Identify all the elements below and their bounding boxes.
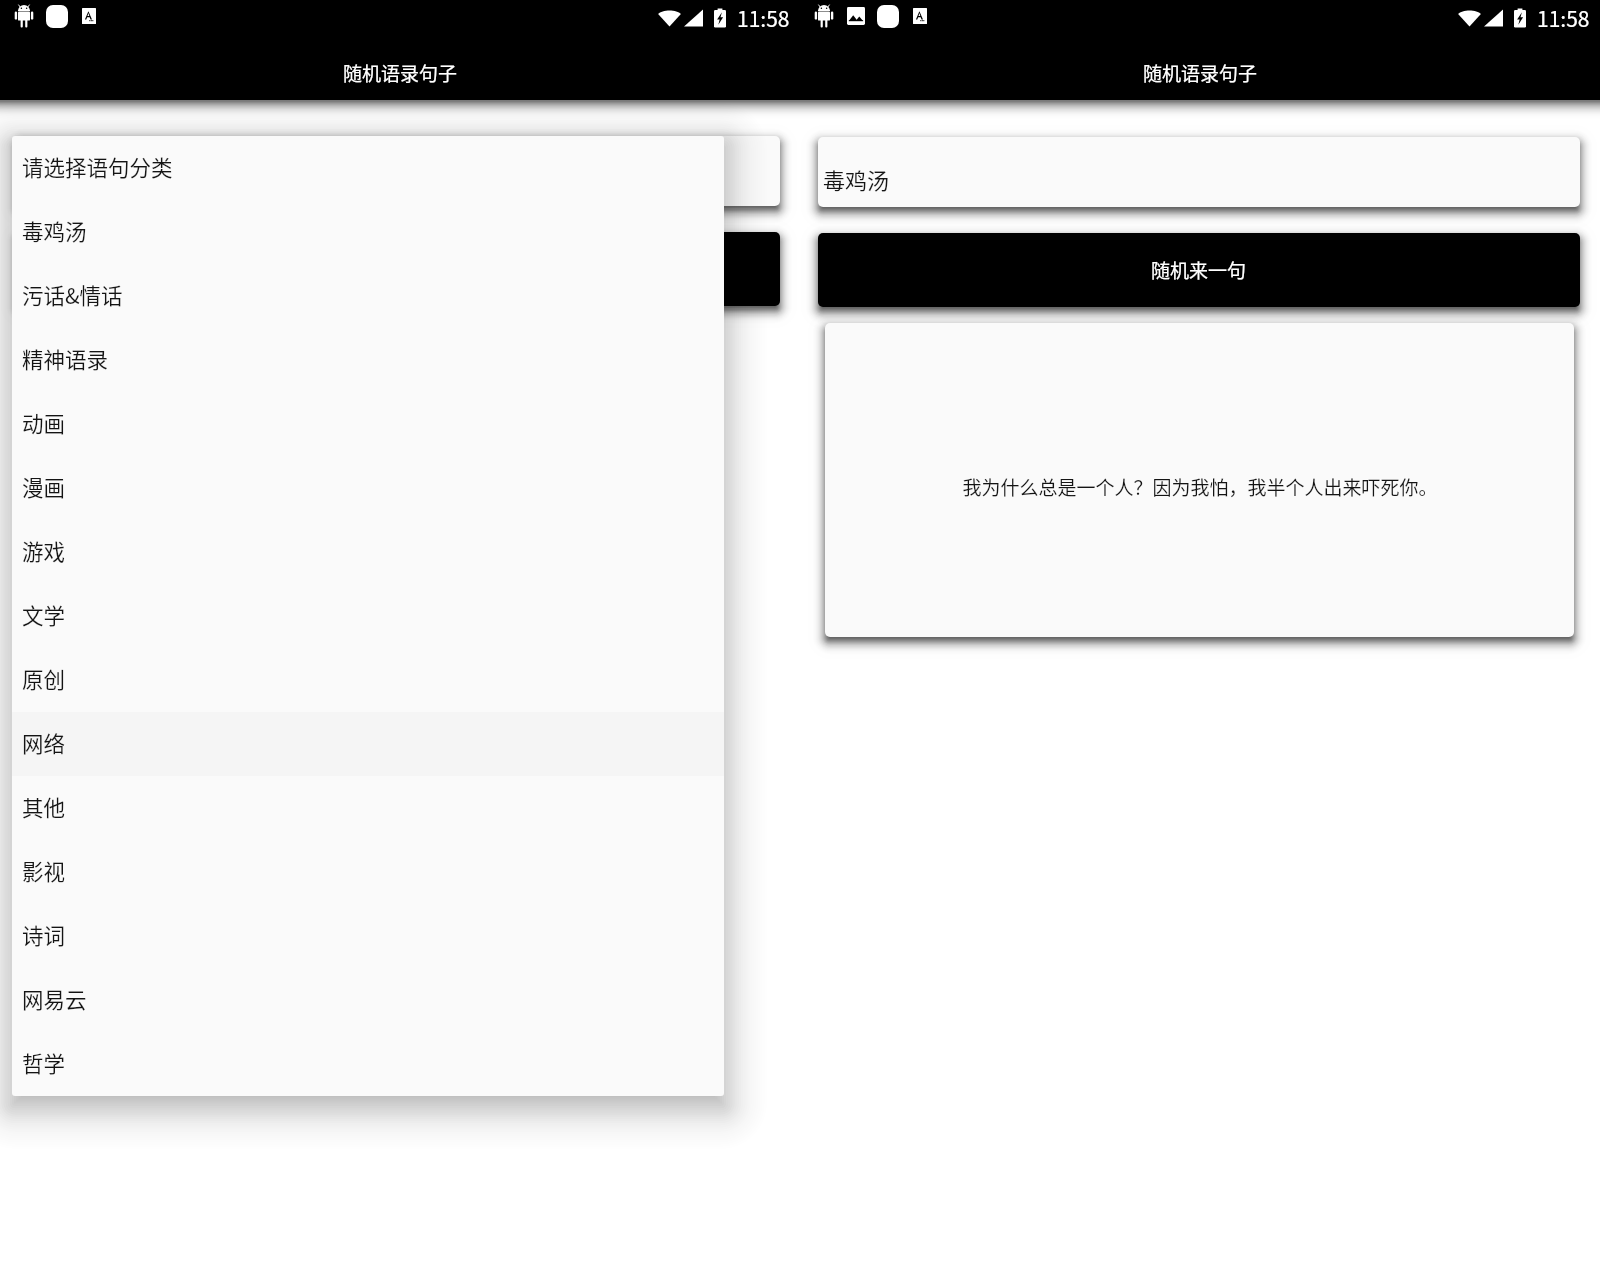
staticText: 我为什么总是一个人？因为我怕，我半个人出来吓死你。 <box>962 473 1438 501</box>
button[interactable]: 请选择语句分类 <box>12 136 724 200</box>
staticText: 其他 <box>22 791 66 822</box>
staticText: 随机语录句子 <box>1143 59 1258 87</box>
staticText: 游戏 <box>22 535 66 566</box>
button[interactable]: 漫画 <box>12 456 724 520</box>
staticText: 哲学 <box>22 1047 66 1078</box>
staticText: 11:58 <box>1537 3 1590 33</box>
staticText: 11:58 <box>737 3 790 33</box>
staticText: 诗词 <box>22 919 66 950</box>
staticText: 污话&情话 <box>22 279 123 310</box>
staticText: 毒鸡汤 <box>22 215 87 246</box>
staticText: 原创 <box>22 663 66 694</box>
button[interactable]: 网络 <box>12 712 724 776</box>
button[interactable]: 其他 <box>12 776 724 840</box>
staticText: 漫画 <box>22 471 66 502</box>
button[interactable]: 随机来一句 <box>18 232 780 306</box>
staticText: 精神语录 <box>22 343 109 374</box>
button[interactable]: 污话&情话 <box>12 264 724 328</box>
staticText: 网易云 <box>22 983 87 1014</box>
staticText: 毒鸡汤 <box>823 163 890 195</box>
staticText: 随机来一句 <box>1151 256 1247 284</box>
button[interactable]: 毒鸡汤 <box>12 200 724 264</box>
staticText: 请选择语句分类 <box>22 151 173 182</box>
button[interactable]: 请选择语句分类 <box>18 136 780 206</box>
button[interactable]: 随机来一句 <box>818 233 1580 307</box>
staticText: 文学 <box>22 599 66 630</box>
staticText: 动画 <box>22 407 66 438</box>
button[interactable]: 原创 <box>12 648 724 712</box>
button[interactable]: 游戏 <box>12 520 724 584</box>
button[interactable]: 哲学 <box>12 1032 724 1096</box>
button[interactable]: 毒鸡汤 <box>818 137 1580 207</box>
staticText: 网络 <box>22 727 66 758</box>
button[interactable]: 网易云 <box>12 968 724 1032</box>
button[interactable]: 诗词 <box>12 904 724 968</box>
button[interactable]: 文学 <box>12 584 724 648</box>
staticText: 随机语录句子 <box>343 59 458 87</box>
button[interactable]: 精神语录 <box>12 328 724 392</box>
staticText: 影视 <box>22 855 66 886</box>
button[interactable]: 影视 <box>12 840 724 904</box>
button[interactable]: 动画 <box>12 392 724 456</box>
